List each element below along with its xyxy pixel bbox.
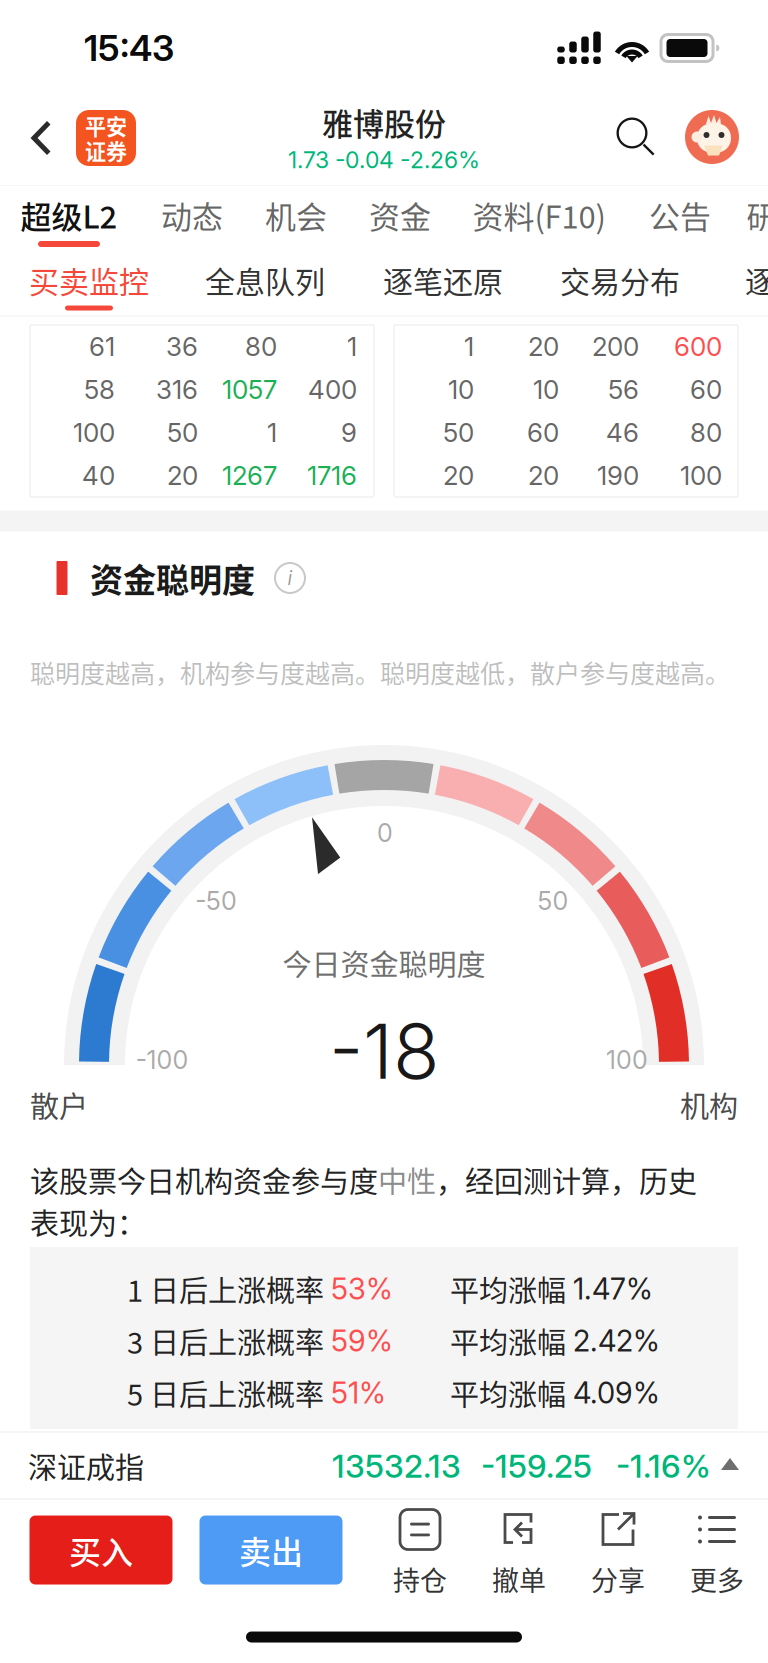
staticText: 平均涨幅 — [450, 1372, 573, 1414]
staticText: 平均涨幅 — [450, 1268, 573, 1310]
staticText: 1267 — [222, 460, 277, 491]
staticText: 100 — [680, 460, 722, 491]
staticText: 全息队列 — [205, 258, 325, 302]
staticText: 证券 — [85, 135, 127, 166]
staticText: 80 — [245, 331, 277, 362]
button[interactable]: 逐 — [670, 249, 768, 311]
staticText: 10 — [533, 374, 559, 405]
staticText: 50 — [537, 886, 568, 916]
staticText: 机构 — [680, 1084, 738, 1126]
staticText: 资料(F10) — [472, 193, 605, 237]
staticText: 0 — [377, 818, 393, 848]
staticText: 逐 — [745, 258, 768, 302]
staticText: 撤单 — [492, 1559, 546, 1598]
button[interactable]: 动态 — [102, 182, 282, 248]
button[interactable]: 分享 — [568, 1504, 668, 1602]
button[interactable]: 资料(F10) — [449, 182, 629, 248]
staticText: 58 — [84, 374, 115, 405]
staticText: 3 日后上涨概率 — [127, 1320, 331, 1362]
staticText: 1.47% — [573, 1271, 653, 1307]
button[interactable]: 卖出 — [199, 1515, 342, 1584]
button[interactable]: 研 — [672, 182, 768, 248]
button[interactable]: 买卖监控 — [0, 249, 179, 311]
staticText: 20 — [528, 460, 559, 491]
staticText: 1 — [267, 417, 277, 448]
staticText: 1 — [347, 331, 357, 362]
staticText: 600 — [674, 331, 722, 362]
staticText: 平安 — [85, 110, 127, 141]
staticText: 4.09% — [573, 1375, 660, 1411]
staticText: 1 — [464, 331, 474, 362]
staticText: 2.42% — [573, 1323, 660, 1359]
button[interactable]: 逐笔还原 — [353, 249, 533, 311]
staticText: 动态 — [161, 193, 223, 237]
staticText: 1 日后上涨概率 — [127, 1268, 331, 1310]
staticText: 13532.13 — [332, 1447, 461, 1485]
button[interactable]: 全息队列 — [175, 249, 355, 311]
staticText: 交易分布 — [560, 258, 680, 302]
staticText: 持仓 — [393, 1559, 447, 1598]
staticText: 15:43 — [84, 26, 174, 70]
staticText: -100 — [135, 1045, 188, 1075]
staticText: 190 — [597, 460, 639, 491]
staticText: 46 — [606, 417, 639, 448]
staticText: 今日资金聪明度 — [282, 942, 485, 984]
staticText: 40 — [82, 460, 115, 491]
button[interactable]: Back — [8, 90, 74, 186]
staticText: -1.16% — [616, 1447, 711, 1485]
staticText: 36 — [166, 331, 198, 362]
button[interactable]: 买入 — [29, 1515, 172, 1584]
staticText: 卖出 — [239, 1527, 303, 1573]
button[interactable]: 持仓 — [370, 1504, 470, 1602]
staticText: 316 — [156, 374, 198, 405]
staticText: 平均涨幅 — [450, 1320, 573, 1362]
button[interactable]: 资金 — [310, 182, 490, 248]
staticText: 公告 — [649, 193, 711, 237]
button[interactable]: 撤单 — [469, 1504, 569, 1602]
button[interactable]: 公告 — [590, 182, 768, 248]
staticText: -159.25 — [481, 1447, 592, 1485]
staticText: 100 — [73, 417, 115, 448]
button[interactable]: 超级L2 — [0, 182, 159, 248]
staticText: -50 — [195, 886, 237, 916]
staticText: 20 — [528, 331, 559, 362]
button[interactable]: 更多 — [667, 1504, 767, 1602]
button[interactable]: 机会 — [206, 182, 386, 248]
button[interactable]: Profile — [674, 89, 750, 185]
staticText: 机会 — [265, 193, 327, 237]
staticText: 9 — [341, 417, 357, 448]
staticText: 中性 — [378, 1159, 436, 1201]
staticText: -18 — [329, 1005, 439, 1097]
staticText: 400 — [308, 374, 357, 405]
staticText: 逐笔还原 — [383, 258, 503, 302]
staticText: i — [287, 566, 292, 589]
staticText: 研 — [746, 193, 768, 237]
staticText: 10 — [448, 374, 474, 405]
staticText: 20 — [167, 460, 198, 491]
staticText: 聪明度越高，机构参与度越高。聪明度越低，散户参与度越高。 — [30, 654, 730, 690]
staticText: 雅博股份 — [322, 100, 446, 144]
staticText: 散户 — [30, 1084, 88, 1126]
staticText: 买入 — [69, 1527, 133, 1573]
staticText: 超级L2 — [20, 193, 117, 237]
staticText: 80 — [690, 417, 722, 448]
button[interactable]: 交易分布 — [530, 249, 710, 311]
staticText: 59% — [331, 1323, 393, 1359]
staticText: 深证成指 — [28, 1445, 144, 1487]
staticText: 该股票今日机构资金参与度 — [30, 1159, 378, 1201]
staticText: 53% — [331, 1271, 393, 1307]
staticText: 1716 — [307, 460, 357, 491]
button[interactable]: Search — [598, 89, 674, 185]
staticText: 51% — [331, 1375, 386, 1411]
staticText: 20 — [443, 460, 474, 491]
staticText: 60 — [690, 374, 722, 405]
staticText: 更多 — [690, 1559, 744, 1598]
button[interactable]: 平安证券 — [66, 90, 146, 186]
staticText: 5 日后上涨概率 — [127, 1372, 331, 1414]
staticText: 50 — [443, 417, 474, 448]
staticText: 50 — [167, 417, 198, 448]
staticText: 买卖监控 — [29, 258, 149, 302]
staticText: 表现为： — [30, 1201, 146, 1243]
staticText: 资金聪明度 — [90, 554, 255, 602]
staticText: 1.73 -0.04 -2.26% — [288, 146, 480, 174]
